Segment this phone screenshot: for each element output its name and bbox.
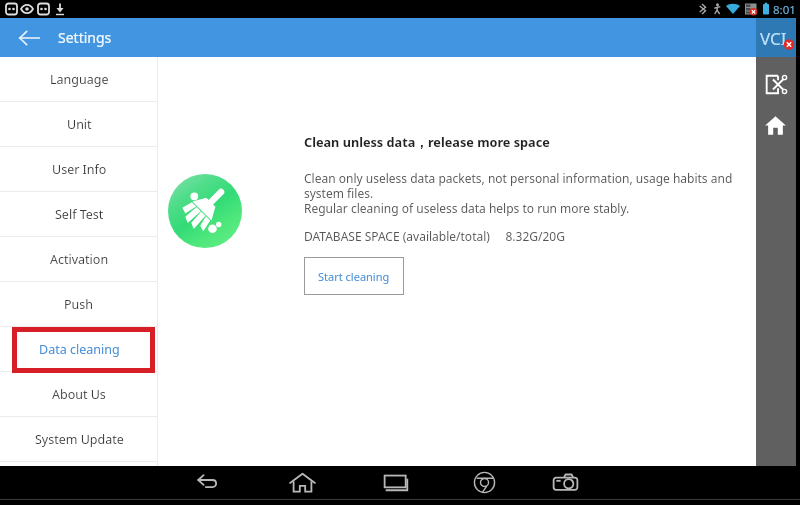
button[interactable]: Data cleaning bbox=[0, 327, 158, 372]
staticText: System Update bbox=[35, 431, 124, 448]
staticText: Self Test bbox=[55, 206, 104, 223]
button[interactable]: VCI bbox=[756, 18, 796, 57]
button[interactable]: Back bbox=[0, 18, 58, 57]
button[interactable]: User Info bbox=[0, 147, 158, 192]
button[interactable]: Self Test bbox=[0, 192, 158, 237]
button[interactable]: Language bbox=[0, 57, 158, 102]
staticText: Language bbox=[50, 71, 109, 88]
staticText: Start cleaning bbox=[318, 269, 390, 284]
staticText: Activation bbox=[50, 251, 109, 268]
button[interactable]: Back bbox=[184, 463, 232, 502]
staticText: Data cleaning bbox=[39, 341, 120, 358]
staticText: Clean only useless data packets, not per… bbox=[304, 170, 733, 216]
button[interactable]: Recent apps bbox=[372, 463, 420, 502]
staticText: Clean unless data，release more space bbox=[304, 133, 550, 150]
button[interactable]: System Update bbox=[0, 417, 158, 462]
button[interactable]: About Us bbox=[0, 372, 158, 417]
button[interactable]: Unit bbox=[0, 102, 158, 147]
button[interactable]: Browser bbox=[460, 463, 508, 502]
staticText: 8:01 bbox=[773, 2, 796, 18]
button[interactable]: Screenshot bbox=[541, 463, 589, 502]
staticText: DATABASE SPACE (available/total) 8.32G/2… bbox=[304, 228, 565, 244]
staticText: About Us bbox=[52, 386, 106, 403]
staticText: Unit bbox=[67, 116, 92, 133]
staticText: VCI bbox=[760, 27, 787, 50]
button[interactable]: Home bbox=[756, 106, 795, 144]
button[interactable]: Screenshot bbox=[756, 65, 795, 103]
staticText: Settings bbox=[58, 28, 112, 47]
button[interactable]: Start cleaning bbox=[304, 257, 404, 295]
staticText: Push bbox=[64, 296, 94, 313]
button[interactable]: Home bbox=[278, 463, 326, 502]
button[interactable]: Push bbox=[0, 282, 158, 327]
button[interactable]: Activation bbox=[0, 237, 158, 282]
staticText: User Info bbox=[52, 161, 107, 178]
